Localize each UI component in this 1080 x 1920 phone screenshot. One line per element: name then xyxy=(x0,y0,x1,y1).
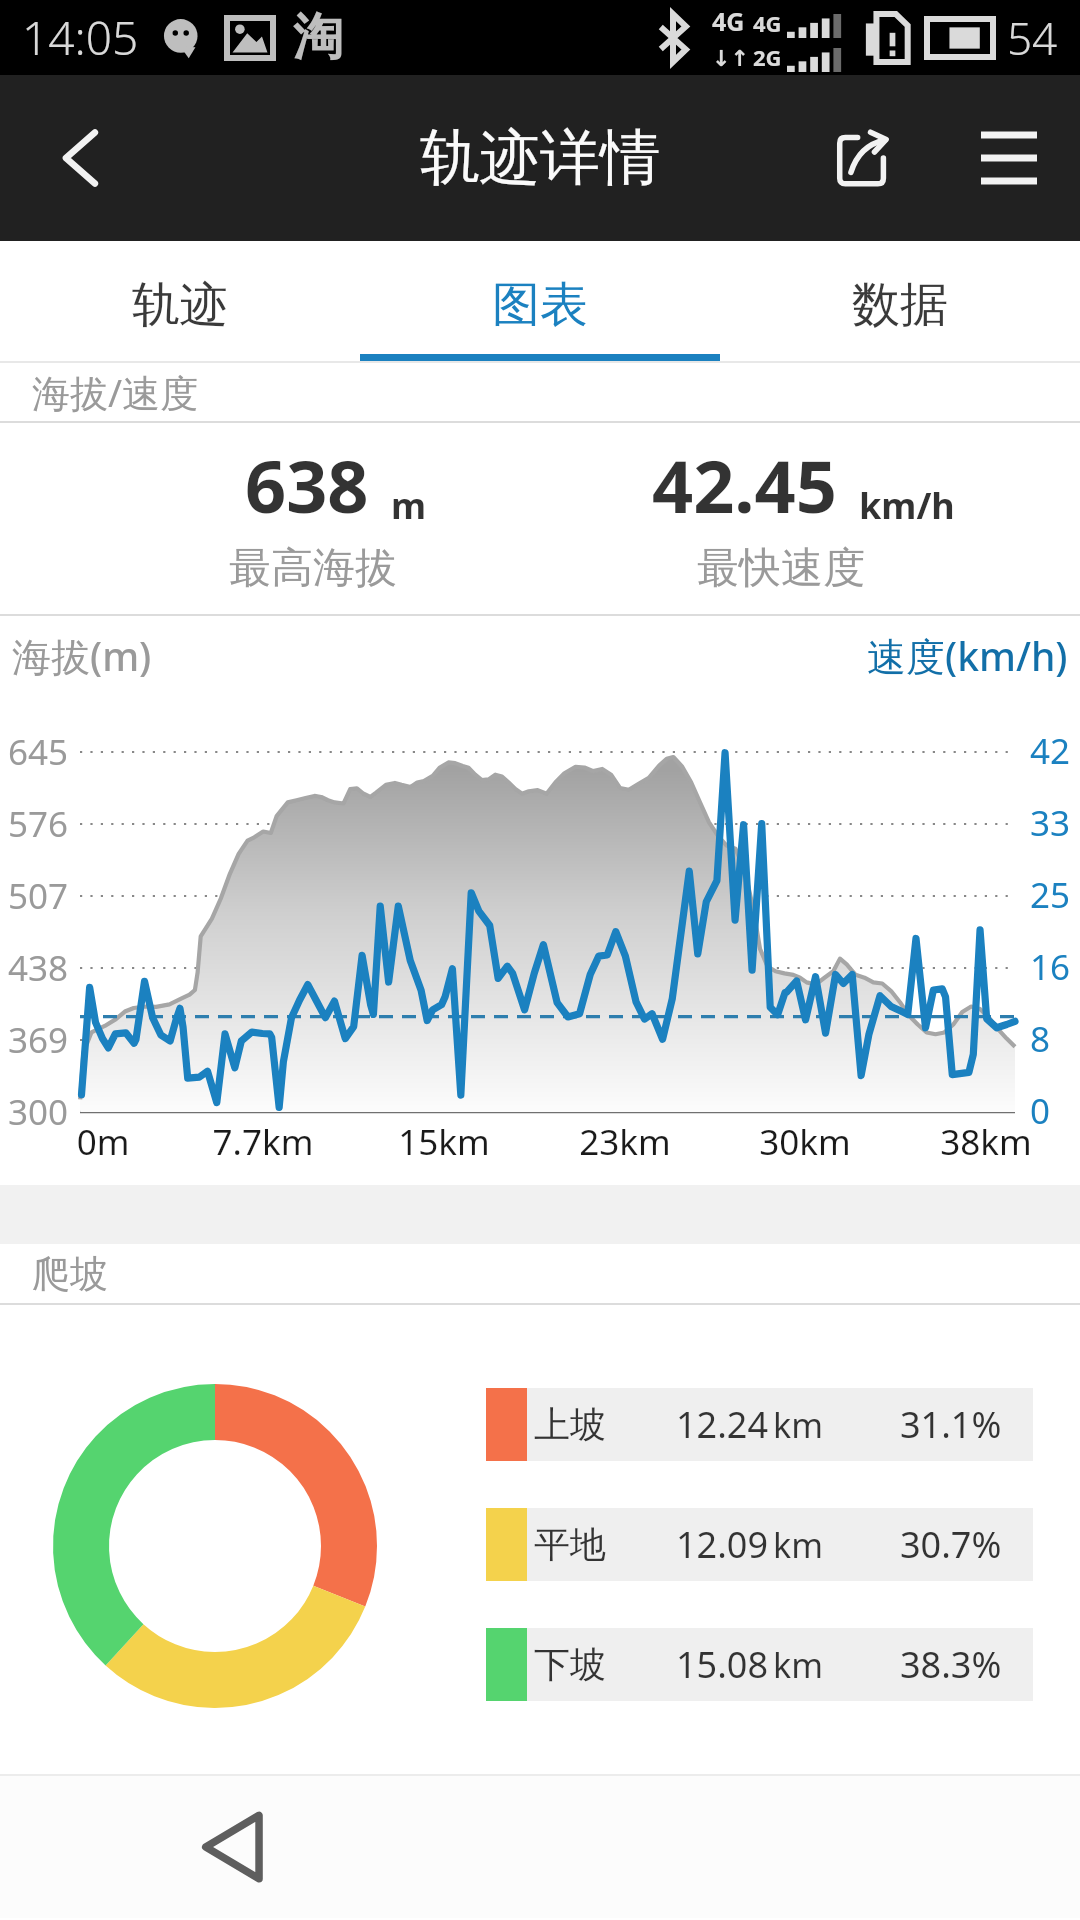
staticText: km xyxy=(773,1402,823,1448)
button[interactable]: 轨迹 xyxy=(0,241,360,361)
staticText: 507 xyxy=(0,872,68,920)
button[interactable]: Share xyxy=(768,103,954,213)
staticText: 数据 xyxy=(852,275,948,335)
staticText: m xyxy=(391,481,427,530)
staticText: km/h xyxy=(859,481,955,530)
staticText: km xyxy=(773,1522,823,1568)
staticText: ↓↑ xyxy=(712,46,749,72)
staticText: 438 xyxy=(0,944,68,992)
button[interactable]: Menu xyxy=(954,103,1064,213)
staticText: 54 xyxy=(1007,8,1058,68)
staticText: 0 xyxy=(1030,1087,1080,1135)
staticText: 4G xyxy=(712,4,745,38)
staticText: 海拔/速度 xyxy=(32,366,199,418)
staticText: 14:05 xyxy=(22,6,139,69)
staticText: 33 xyxy=(1030,799,1080,847)
staticText: 12.24 xyxy=(676,1400,769,1449)
staticText: 上坡 xyxy=(534,1402,606,1447)
staticText: 轨迹 xyxy=(132,275,228,335)
staticText: 图表 xyxy=(492,275,588,335)
staticText: 42.45 xyxy=(652,436,837,534)
staticText: 23km xyxy=(525,1118,725,1166)
staticText: 645 xyxy=(0,728,68,776)
staticText: 15.08 xyxy=(676,1640,769,1689)
staticText: 30.7% xyxy=(900,1520,1002,1569)
staticText: 8 xyxy=(1030,1015,1080,1063)
staticText: 0m xyxy=(3,1118,203,1166)
staticText: 300 xyxy=(0,1088,68,1136)
staticText: km xyxy=(773,1642,823,1688)
staticText: 最高海拔 xyxy=(113,542,513,595)
button[interactable]: 上坡 xyxy=(486,1388,1033,1461)
staticText: 30km xyxy=(705,1118,905,1166)
staticText: 7.7km xyxy=(163,1118,363,1166)
staticText: 下坡 xyxy=(534,1642,606,1687)
staticText: 轨迹详情 xyxy=(420,120,660,196)
staticText: 576 xyxy=(0,800,68,848)
staticText: 16 xyxy=(1030,943,1080,991)
button[interactable]: 平地 xyxy=(486,1508,1033,1581)
staticText: 爬坡 xyxy=(32,1250,108,1298)
staticText: 最快速度 xyxy=(581,542,981,595)
staticText: 平地 xyxy=(534,1522,606,1567)
staticText: 淘 xyxy=(293,6,343,69)
staticText: 2G xyxy=(753,42,782,72)
staticText: 15km xyxy=(344,1118,544,1166)
button[interactable]: Back xyxy=(178,1792,288,1902)
staticText: 638 xyxy=(245,436,369,534)
button[interactable]: Back xyxy=(26,103,136,213)
staticText: 31.1% xyxy=(900,1400,1002,1449)
staticText: 42 xyxy=(1030,727,1080,775)
button[interactable]: 图表 xyxy=(360,241,720,361)
staticText: 海拔(m) xyxy=(12,629,152,682)
staticText: 12.09 xyxy=(676,1520,769,1569)
staticText: 369 xyxy=(0,1016,68,1064)
staticText: 4G xyxy=(753,8,782,38)
staticText: 速度(km/h) xyxy=(867,629,1068,682)
staticText: 38.3% xyxy=(900,1640,1002,1689)
staticText: 25 xyxy=(1030,871,1080,919)
button[interactable]: 数据 xyxy=(720,241,1080,361)
staticText: 38km xyxy=(886,1118,1080,1166)
button[interactable]: 下坡 xyxy=(486,1628,1033,1701)
